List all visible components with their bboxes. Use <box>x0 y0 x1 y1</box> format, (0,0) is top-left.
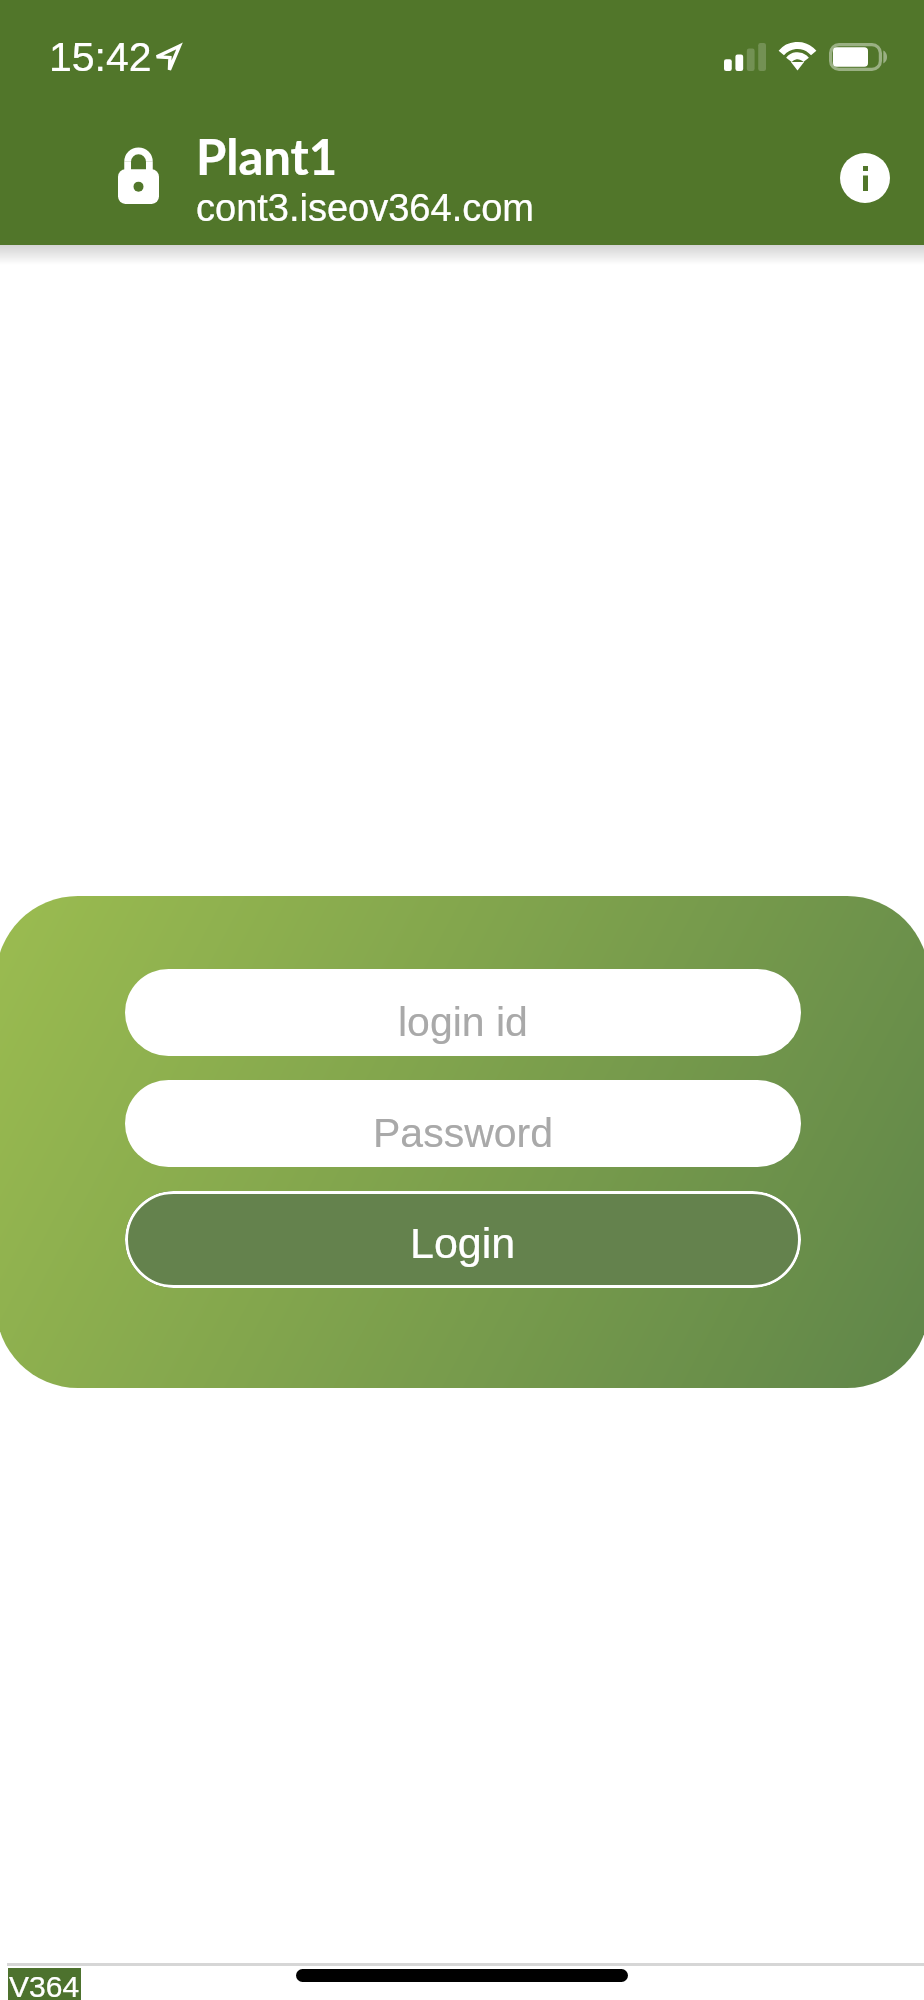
staticText: 15:42 <box>49 34 152 80</box>
button[interactable]: Password <box>125 1080 801 1167</box>
other: Version V364 <box>8 1968 81 2000</box>
staticText: cont3.iseov364.com <box>196 187 534 229</box>
staticText: V364 <box>9 1970 80 2000</box>
staticText: Password <box>373 1110 554 1156</box>
button[interactable]: login id <box>125 969 801 1056</box>
button[interactable]: Login <box>125 1191 801 1288</box>
button[interactable]: Info <box>840 153 890 203</box>
staticText: Plant1 <box>196 127 338 186</box>
staticText: login id <box>398 999 528 1045</box>
staticText: Login <box>410 1219 516 1267</box>
